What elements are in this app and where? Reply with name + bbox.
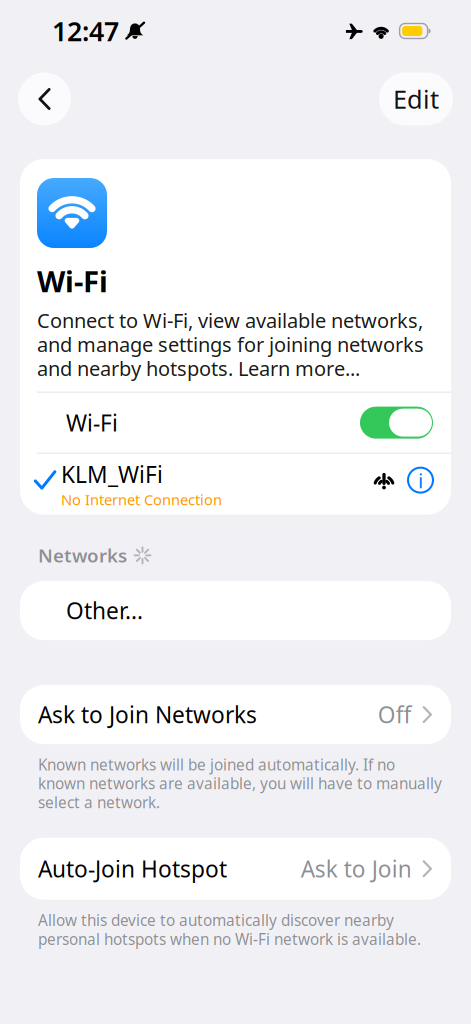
staticText: Auto-Join Hotspot — [38, 853, 227, 884]
staticText: Ask to Join — [301, 853, 412, 884]
staticText: No Internet Connection — [61, 490, 222, 510]
staticText: Known networks will be joined automatica… — [38, 754, 442, 813]
staticText: Wi-Fi — [37, 261, 108, 301]
staticText: 12:47 — [52, 13, 119, 49]
button[interactable]: Edit — [379, 72, 453, 125]
staticText: Wi-Fi — [66, 407, 118, 438]
staticText: Connect to Wi-Fi, view available network… — [37, 307, 424, 382]
button[interactable]: Wi-Fi — [20, 393, 451, 453]
staticText: Networks — [38, 543, 127, 568]
staticText: KLM_WiFi — [61, 459, 163, 490]
staticText: Off — [378, 699, 412, 730]
staticText: Other... — [66, 595, 143, 626]
staticText: Allow this device to automatically disco… — [38, 910, 421, 949]
button[interactable]: Auto-Join Hotspot — [20, 838, 451, 900]
button[interactable]: Back — [18, 72, 71, 125]
staticText: Ask to Join Networks — [38, 699, 257, 730]
staticText: i — [418, 466, 423, 494]
button[interactable]: KLM_WiFi — [20, 454, 451, 515]
button[interactable]: Ask to Join Networks — [20, 685, 451, 744]
button[interactable]: Other... — [20, 581, 451, 640]
staticText: Edit — [393, 82, 439, 116]
